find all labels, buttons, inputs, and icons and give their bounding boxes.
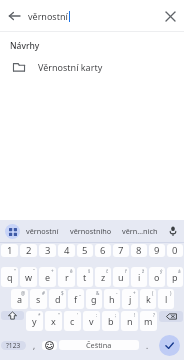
button[interactable]: x — [45, 311, 62, 331]
staticText: 2 — [26, 244, 32, 257]
button[interactable]: d — [49, 289, 66, 309]
button[interactable]: j — [122, 289, 138, 309]
button[interactable]: 1 — [1, 244, 18, 257]
staticText: . — [146, 340, 149, 351]
staticText: r — [65, 271, 69, 283]
staticText: š — [88, 268, 91, 274]
staticText: věrn…nich — [122, 226, 158, 236]
staticText: ' — [77, 312, 79, 318]
staticText: 7 — [118, 244, 124, 257]
button[interactable]: p — [167, 267, 183, 287]
staticText: t — [83, 271, 87, 283]
button[interactable]: Věrnostní karty — [0, 54, 184, 80]
staticText: k — [146, 293, 151, 305]
staticText: h — [109, 293, 115, 305]
staticText: e — [45, 271, 51, 283]
button[interactable]: o — [149, 267, 165, 287]
staticText: l — [165, 293, 168, 305]
staticText: c — [70, 315, 75, 327]
staticText: , — [33, 340, 36, 351]
button[interactable]: 7 — [113, 244, 129, 257]
button[interactable]: 6 — [95, 244, 111, 257]
button[interactable]: 2 — [20, 244, 37, 257]
button[interactable]: u — [113, 267, 129, 287]
staticText: věrnostní — [26, 226, 59, 236]
staticText: ?123 — [6, 341, 21, 350]
button[interactable]: Emoji — [42, 341, 57, 350]
staticText: ě — [70, 268, 73, 274]
button[interactable]: v — [83, 311, 100, 331]
button[interactable]: n — [121, 311, 138, 331]
staticText: s — [36, 293, 41, 305]
staticText: a — [17, 293, 23, 305]
button[interactable]: 5 — [77, 244, 93, 257]
button[interactable]: w — [20, 267, 37, 287]
button[interactable]: Comma — [27, 332, 41, 358]
button[interactable]: y — [26, 311, 43, 331]
staticText: ! — [134, 312, 136, 318]
button[interactable]: 3 — [39, 244, 56, 257]
button[interactable]: l — [158, 289, 174, 309]
button[interactable]: 4 — [58, 244, 75, 257]
button[interactable]: 8 — [131, 244, 147, 257]
staticText: * — [38, 312, 41, 318]
button[interactable]: Voice input — [162, 220, 184, 242]
staticText: ý — [160, 268, 163, 274]
button[interactable]: m — [140, 311, 157, 331]
staticText: m — [144, 315, 153, 327]
staticText: n — [127, 315, 133, 327]
button[interactable]: Back — [0, 2, 28, 30]
button[interactable]: 9 — [149, 244, 165, 257]
staticText: q — [7, 271, 13, 283]
staticText: 6 — [100, 244, 106, 257]
button[interactable]: Clear — [156, 2, 184, 30]
button[interactable]: 0 — [167, 244, 183, 257]
button[interactable]: z — [95, 267, 111, 287]
staticText: y — [32, 315, 37, 327]
staticText: ( — [152, 290, 154, 296]
staticText: 8 — [136, 244, 142, 257]
button[interactable]: ?123 — [1, 341, 26, 350]
staticText: Věrnostní karty — [38, 61, 103, 73]
staticText: x — [51, 315, 56, 327]
button[interactable]: Enter — [159, 335, 180, 356]
button[interactable]: r — [58, 267, 75, 287]
staticText: w — [25, 271, 33, 283]
button[interactable]: s — [30, 289, 47, 309]
button[interactable]: i — [131, 267, 147, 287]
button[interactable]: Čeština — [59, 340, 139, 350]
staticText: 1 — [7, 244, 13, 257]
button[interactable]: h — [104, 289, 120, 309]
staticText: 9 — [154, 244, 160, 257]
staticText: : — [96, 312, 98, 318]
staticText: " — [58, 312, 60, 318]
button[interactable]: g — [86, 289, 102, 309]
button[interactable]: q — [1, 267, 18, 287]
button[interactable]: t — [77, 267, 93, 287]
button[interactable]: Period — [140, 332, 154, 358]
button[interactable]: b — [102, 311, 119, 331]
staticText: j — [129, 293, 132, 305]
staticText: z — [101, 271, 106, 283]
staticText: o — [154, 271, 160, 283]
staticText: & — [96, 290, 100, 296]
staticText: d — [55, 293, 61, 305]
staticText: věrnostní — [28, 10, 68, 22]
button[interactable]: e — [39, 267, 56, 287]
button[interactable]: f — [68, 289, 84, 309]
button[interactable]: Shift — [1, 311, 24, 320]
staticText: " — [14, 268, 16, 274]
button[interactable]: Backspace — [159, 311, 183, 322]
button[interactable]: Keyboard options — [5, 224, 20, 239]
button[interactable]: věrn…nich — [117, 220, 162, 242]
button[interactable]: věrnostní — [20, 220, 65, 242]
button[interactable]: věrnostniho — [65, 220, 117, 242]
staticText: Návrhy — [10, 40, 40, 52]
staticText: Čeština — [86, 340, 112, 350]
button[interactable]: c — [64, 311, 81, 331]
staticText: # — [42, 290, 45, 296]
staticText: $ — [61, 290, 64, 296]
staticText: ř — [125, 268, 127, 274]
button[interactable]: k — [140, 289, 156, 309]
button[interactable]: a — [11, 289, 28, 309]
